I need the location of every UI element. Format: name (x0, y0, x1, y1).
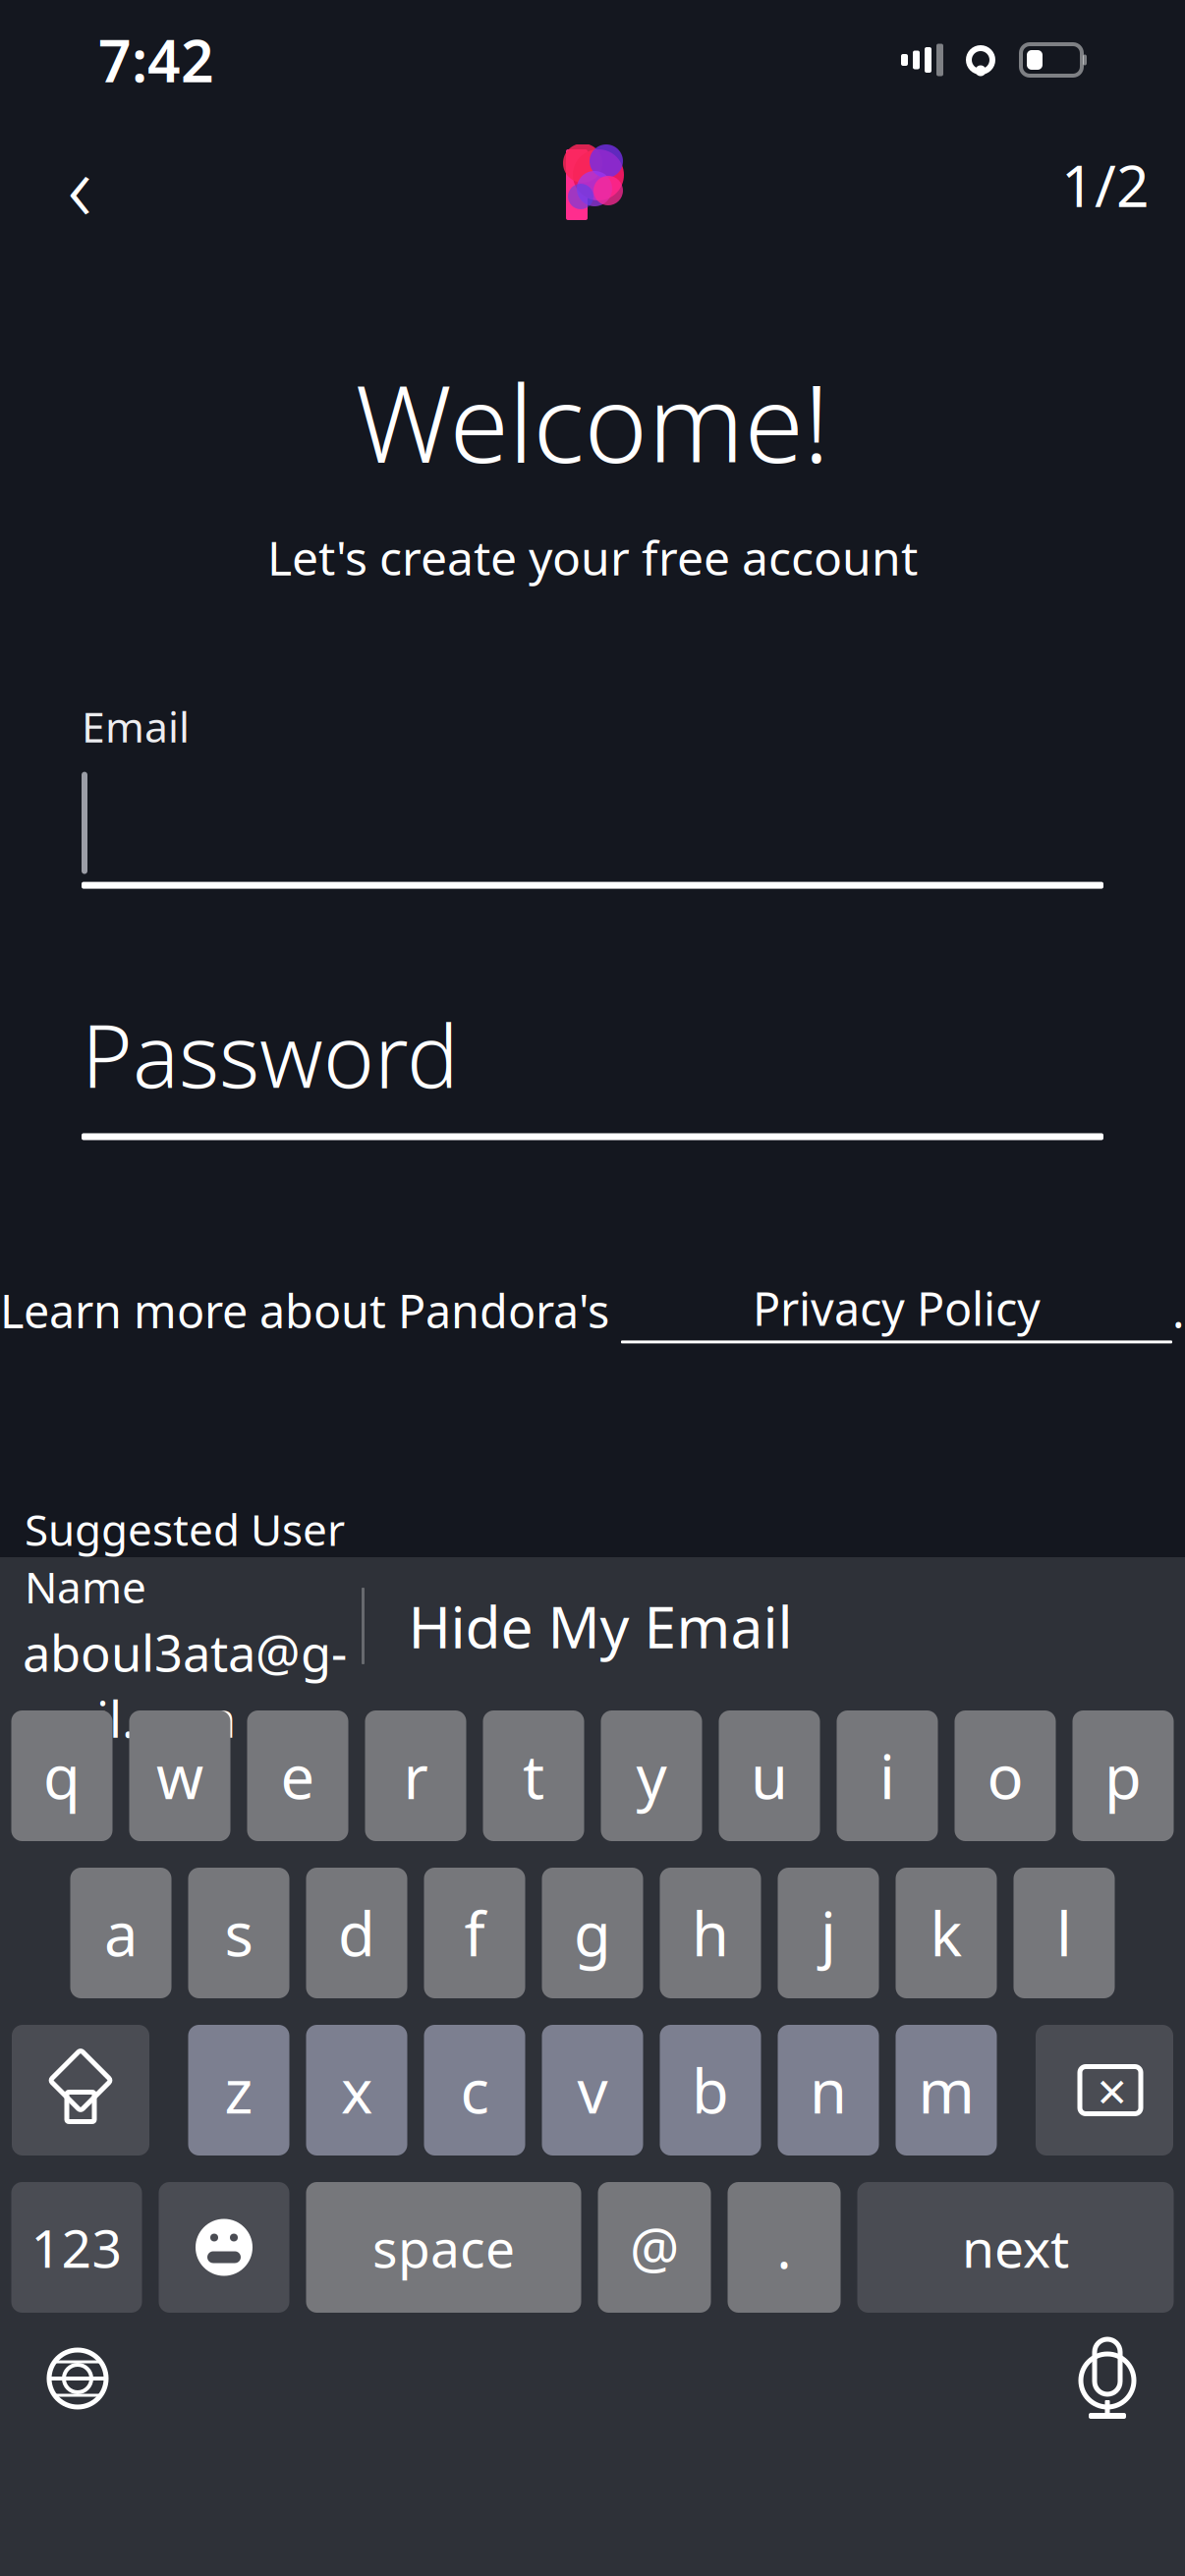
button[interactable]: Delete (1036, 2025, 1173, 2156)
button[interactable]: @ (598, 2182, 711, 2313)
staticText: 1/2 (1061, 146, 1150, 223)
staticText: space (372, 2213, 515, 2282)
staticText: y (636, 1736, 667, 1816)
button[interactable]: Hide My Email (365, 1567, 836, 1685)
button[interactable]: 123 (11, 2182, 142, 2313)
button[interactable]: d (306, 1868, 407, 1998)
button[interactable]: y (601, 1710, 702, 1841)
staticText: s (225, 1893, 253, 1973)
staticText: z (225, 2050, 253, 2130)
staticText: . (1172, 1280, 1185, 1341)
staticText: o (987, 1736, 1023, 1816)
staticText: e (281, 1736, 315, 1816)
staticText: next (962, 2213, 1069, 2282)
staticText: Let's create your free account (267, 526, 918, 588)
button[interactable]: Shift (12, 2025, 149, 2156)
staticText: n (810, 2050, 847, 2130)
button[interactable]: m (896, 2025, 997, 2156)
staticText: d (338, 1893, 375, 1973)
button[interactable]: c (424, 2025, 525, 2156)
button[interactable]: Next keyboard (33, 2334, 122, 2423)
staticText: × (1097, 2055, 1128, 2125)
staticText: j (820, 1893, 836, 1973)
button[interactable]: Back (35, 140, 124, 229)
staticText: a (104, 1893, 138, 1973)
staticText: i (879, 1736, 895, 1816)
staticText: @ (630, 2211, 679, 2284)
button[interactable]: t (483, 1710, 584, 1841)
button[interactable]: k (896, 1868, 997, 1998)
button[interactable]: n (778, 2025, 879, 2156)
button[interactable]: v (542, 2025, 643, 2156)
button[interactable]: e (247, 1710, 348, 1841)
staticText: Welcome! (355, 350, 830, 492)
button[interactable]: space (306, 2182, 581, 2313)
staticText: Email (82, 698, 190, 754)
button[interactable]: Emoji (159, 2182, 289, 2313)
staticText: 7:42 (98, 22, 214, 98)
button[interactable]: o (955, 1710, 1056, 1841)
staticText: x (341, 2050, 372, 2130)
staticText: b (692, 2050, 729, 2130)
button[interactable]: w (129, 1710, 230, 1841)
button[interactable]: s (188, 1868, 289, 1998)
button[interactable]: j (778, 1868, 879, 1998)
staticText: k (930, 1893, 962, 1973)
staticText: ‹ (67, 122, 92, 247)
staticText: aboul3ata@gmail.com (23, 1619, 347, 1751)
staticText: . (777, 2211, 791, 2284)
staticText: u (751, 1736, 788, 1816)
staticText: r (403, 1736, 428, 1816)
staticText: 123 (31, 2213, 122, 2282)
staticText: l (1056, 1893, 1072, 1973)
staticText: v (577, 2050, 608, 2130)
staticText: g (574, 1893, 611, 1973)
button[interactable]: u (719, 1710, 820, 1841)
staticText: f (464, 1893, 485, 1973)
button[interactable]: p (1072, 1710, 1174, 1841)
staticText: c (460, 2050, 489, 2130)
button[interactable]: next (857, 2182, 1174, 2313)
staticText: m (918, 2050, 974, 2130)
button[interactable]: Learn more about Pandora's (0, 1278, 1185, 1344)
button[interactable]: q (11, 1710, 113, 1841)
staticText: p (1104, 1736, 1142, 1816)
button[interactable]: f (424, 1868, 525, 1998)
button[interactable]: r (365, 1710, 466, 1841)
button[interactable]: b (660, 2025, 761, 2156)
button[interactable]: Dictation (1063, 2334, 1152, 2423)
staticText: q (43, 1736, 81, 1816)
staticText: h (692, 1893, 729, 1973)
staticText: t (523, 1736, 544, 1816)
staticText: Password (82, 997, 459, 1112)
button[interactable]: . (728, 2182, 841, 2313)
staticText: Learn more about Pandora's (0, 1280, 621, 1341)
staticText: w (156, 1736, 203, 1816)
staticText: Privacy Policy (753, 1278, 1041, 1339)
button[interactable]: a (70, 1868, 171, 1998)
staticText: Hide My Email (408, 1588, 792, 1664)
staticText: Suggested User Name (25, 1501, 345, 1615)
button[interactable]: g (542, 1868, 643, 1998)
button[interactable]: Suggested User Name (8, 1567, 362, 1685)
button[interactable]: x (306, 2025, 407, 2156)
button[interactable]: i (837, 1710, 938, 1841)
button[interactable]: h (660, 1868, 761, 1998)
button[interactable]: l (1014, 1868, 1115, 1998)
button[interactable]: z (188, 2025, 289, 2156)
button[interactable]: 1/2 (1061, 140, 1150, 229)
